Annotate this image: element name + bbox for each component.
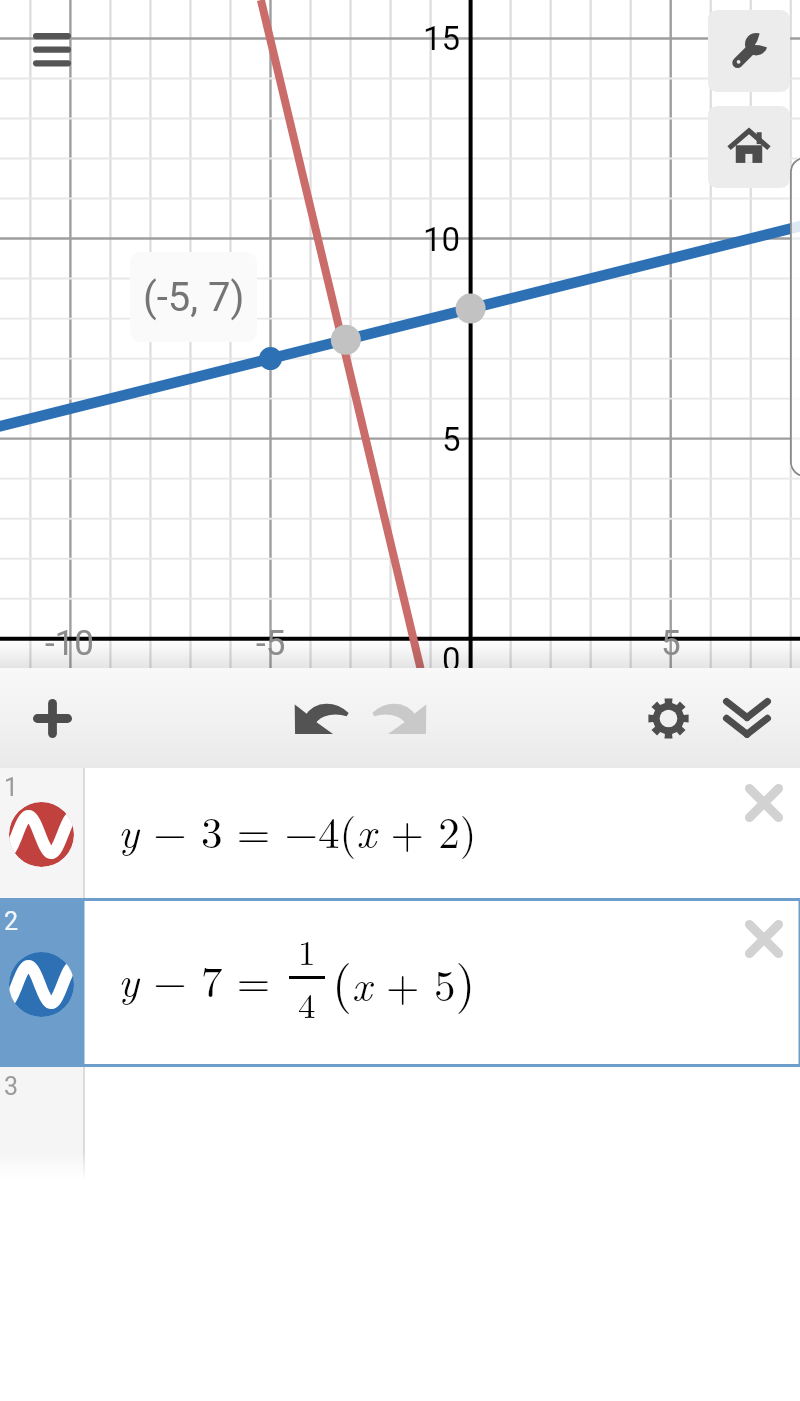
staticText: -5 <box>256 623 286 664</box>
button[interactable]: Home <box>708 106 790 188</box>
button[interactable]: (-5, 7) <box>130 252 257 342</box>
staticText: 10 <box>423 220 461 259</box>
button[interactable]: Add expression <box>12 668 92 768</box>
button[interactable]: 1 <box>0 768 800 898</box>
button[interactable]: Tools <box>708 10 790 92</box>
staticText: -10 <box>45 623 95 664</box>
staticText: 4 <box>298 979 316 1029</box>
staticText: 2 <box>4 907 19 936</box>
button[interactable]: Delete expression 2 <box>735 910 793 968</box>
button[interactable]: Redo <box>361 668 441 768</box>
button[interactable]: Delete expression 1 <box>735 774 793 832</box>
button[interactable]: Undo <box>280 668 360 768</box>
button[interactable]: Collapse keypad <box>707 668 787 768</box>
button[interactable]: Settings <box>628 668 708 768</box>
button[interactable]: 2 <box>0 898 800 1067</box>
staticText: 0 <box>442 640 461 679</box>
staticText: 5 <box>442 420 461 459</box>
staticText: 3 <box>4 1072 19 1101</box>
staticText: (x + 5) <box>332 944 476 1016</box>
staticText: 1 <box>4 773 19 802</box>
staticText: y − 3 = −4(x + 2) <box>118 800 477 861</box>
staticText: 1 <box>298 926 316 976</box>
button[interactable]: Menu <box>18 16 86 82</box>
staticText: (-5, 7) <box>143 274 245 321</box>
staticText: y − 7 = <box>118 949 285 1010</box>
staticText: 5 <box>661 623 681 664</box>
button[interactable]: Zoom controls <box>790 157 800 477</box>
staticText: 15 <box>423 19 461 58</box>
